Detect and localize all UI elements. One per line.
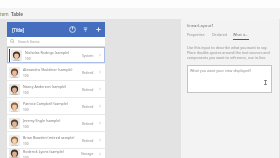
staticText: 100 [23, 125, 29, 129]
staticText: System [82, 53, 94, 58]
button[interactable]: Add [94, 25, 103, 34]
staticText: Nancy Anderson (sample) [23, 84, 67, 89]
staticText: Declared [212, 32, 226, 37]
staticText: Table [11, 11, 24, 17]
staticText: Retired [82, 87, 94, 92]
staticText: Retired [82, 70, 94, 75]
button[interactable]: Nicholas Rodrigo (sample) [7, 47, 105, 63]
staticText: Properties [187, 32, 203, 37]
staticText: Alexandra Shuldiner (sample) [23, 67, 73, 72]
button[interactable]: Nancy Anderson (sample) [7, 81, 105, 97]
staticText: Retired [82, 121, 94, 126]
button[interactable]: Refresh [68, 25, 77, 34]
staticText: linearLayout1 [187, 23, 214, 29]
button[interactable]: Search Items [10, 37, 105, 46]
staticText: 100 [23, 91, 29, 95]
staticText: What you want your view displayed? [190, 68, 252, 73]
staticText: 100 [25, 57, 31, 61]
staticText: Jeremy Engle (sample) [23, 118, 61, 123]
button[interactable]: Patricia Campbell (sample) [7, 98, 105, 114]
button[interactable]: Alexandra Shuldiner (sample) [7, 64, 105, 80]
button[interactable]: Jeremy Engle (sample) [7, 115, 105, 131]
staticText: Storage [81, 151, 94, 156]
button[interactable]: Filter [81, 25, 90, 34]
button[interactable]: Roderick Lyons (sample) [7, 149, 105, 158]
button[interactable]: Brian Bowden (retired sample) [7, 132, 105, 148]
staticText: 100 [23, 108, 29, 112]
staticText: Retired [82, 104, 94, 109]
button[interactable]: What you want your view displayed? [187, 65, 272, 93]
staticText: 100 [23, 156, 29, 158]
button[interactable]: Declared [212, 32, 226, 40]
staticText: Retired [82, 138, 94, 143]
staticText: tem [0, 11, 9, 17]
staticText: [Title] [12, 27, 25, 33]
button[interactable]: Properties [187, 32, 203, 40]
staticText: Patricia Campbell (sample) [23, 101, 68, 106]
staticText: Use this input to describe what you want… [187, 45, 271, 60]
staticText: 100 [23, 74, 29, 78]
staticText: Search Items [18, 39, 40, 44]
staticText: Brian Bowden (retired sample) [23, 135, 75, 140]
staticText: What is... [233, 32, 249, 37]
staticText: 100 [23, 142, 29, 146]
staticText: Roderick Lyons (sample) [23, 149, 64, 154]
staticText: Nicholas Rodrigo (sample) [25, 50, 70, 55]
button[interactable]: What is... [233, 32, 249, 40]
